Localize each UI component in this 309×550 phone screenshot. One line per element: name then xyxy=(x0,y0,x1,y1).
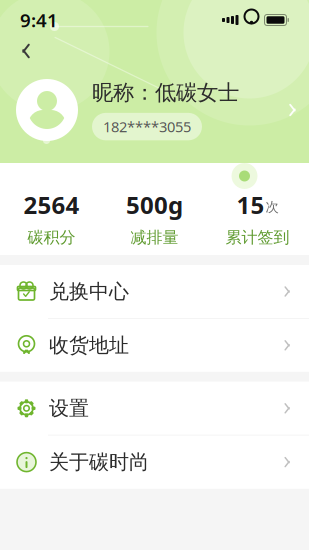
button[interactable]: 兑换中心 xyxy=(0,265,309,318)
staticText: 182****3055 xyxy=(103,117,191,136)
staticText: 收货地址 xyxy=(49,333,129,358)
staticText: 次 xyxy=(265,199,278,215)
staticText: 15 xyxy=(236,189,264,221)
button[interactable]: 收货地址 xyxy=(0,319,309,372)
staticText: 500g xyxy=(126,189,183,221)
staticText: 设置 xyxy=(49,396,89,421)
button[interactable]: 昵称：低碳女士 xyxy=(0,79,309,141)
staticText: 9:41 xyxy=(20,8,58,32)
staticText: 2564 xyxy=(23,189,79,221)
button[interactable]: Back xyxy=(9,34,43,68)
staticText: 减排量 xyxy=(130,228,178,247)
staticText: 碳积分 xyxy=(27,228,75,247)
staticText: 兑换中心 xyxy=(49,279,129,304)
staticText: 关于碳时尚 xyxy=(49,450,149,474)
staticText: 累计签到 xyxy=(225,228,289,247)
button[interactable]: 关于碳时尚 xyxy=(0,436,309,489)
staticText: 昵称：低碳女士 xyxy=(92,80,239,106)
button[interactable]: 设置 xyxy=(0,382,309,435)
